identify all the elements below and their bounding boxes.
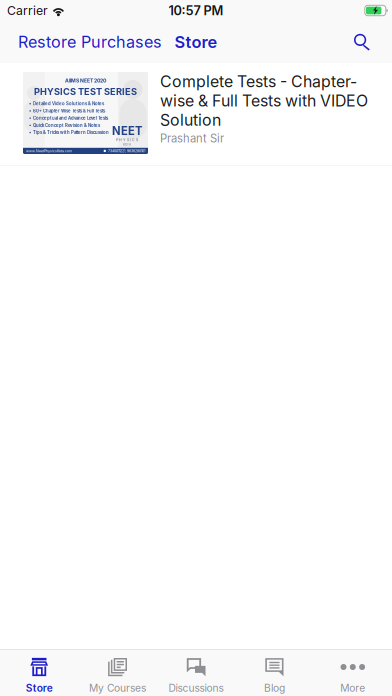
staticText: Complete Tests - Chapter-wise & Full Tes… bbox=[160, 72, 368, 130]
button[interactable]: AIIMS NEET 2020 bbox=[0, 63, 392, 166]
staticText: Prashant Sir bbox=[160, 132, 224, 145]
staticText: 60+ Chapter Wise Tests & Full Tests bbox=[33, 108, 105, 114]
button[interactable]: Restore Purchases bbox=[18, 24, 162, 60]
staticText: Store bbox=[26, 682, 53, 694]
button[interactable]: Store bbox=[0, 650, 78, 696]
staticText: Quick Concept Revision & Notes bbox=[33, 123, 100, 128]
staticText: Carrier bbox=[7, 3, 48, 18]
staticText: AIIMS NEET 2020 bbox=[65, 77, 106, 84]
staticText: Tips & Tricks with Pattern Discussion bbox=[33, 130, 109, 135]
button[interactable]: Blog bbox=[235, 650, 314, 696]
staticText: 7340011221, 9636280101 bbox=[108, 149, 145, 153]
staticText: Detailed Video Solutions & Notes bbox=[33, 101, 104, 106]
staticText: NEET bbox=[112, 124, 142, 138]
staticText: 10:57 PM bbox=[168, 3, 223, 18]
staticText: P H Y S I C S bbox=[116, 138, 138, 142]
staticText: Blog bbox=[264, 682, 285, 694]
staticText: www.NeetPhysicsKota.com bbox=[26, 149, 72, 153]
staticText: Restore Purchases bbox=[18, 32, 162, 52]
button[interactable]: Store bbox=[164, 24, 227, 60]
staticText: Discussions bbox=[168, 682, 223, 694]
staticText: Store bbox=[174, 32, 217, 52]
staticText: Conceptual and Advance Level Tests bbox=[33, 116, 108, 121]
button[interactable]: Search bbox=[353, 27, 370, 57]
staticText: More bbox=[340, 682, 365, 694]
staticText: KOTA bbox=[123, 143, 131, 146]
staticText: My Courses bbox=[89, 682, 146, 694]
button[interactable]: Discussions bbox=[157, 650, 235, 696]
staticText: PHYSICS TEST SERIES bbox=[34, 86, 137, 97]
button[interactable]: My Courses bbox=[78, 650, 157, 696]
button[interactable]: More bbox=[314, 650, 392, 696]
